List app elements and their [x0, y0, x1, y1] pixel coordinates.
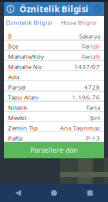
staticText: Hisse Bilgisi	[61, 18, 97, 26]
button[interactable]: Layer info	[4, 2, 17, 16]
staticText: Mahalle/Köy	[8, 52, 44, 61]
staticText: Ada	[8, 73, 19, 81]
button[interactable]: Parsellere dön	[4, 142, 104, 158]
staticText: Parsel	[8, 83, 26, 91]
staticText: Şirt	[90, 113, 100, 122]
staticText: 4728	[84, 83, 100, 91]
staticText: Ana Taşınmaz	[60, 124, 100, 132]
staticText: Sakarya	[79, 32, 100, 40]
staticText: Ferizli	[82, 42, 100, 50]
staticText: Nitelik	[8, 103, 27, 112]
staticText: P-13	[86, 134, 100, 142]
staticText: Öznitelik Bilgisi	[5, 18, 52, 26]
staticText: Pafta	[8, 134, 22, 142]
staticText: İlçe	[8, 42, 18, 50]
button[interactable]: Home	[36, 184, 72, 202]
button[interactable]: Recent apps	[72, 184, 108, 202]
button[interactable]: Settings	[91, 2, 104, 16]
staticText: İl	[8, 32, 12, 40]
staticText: 1437/07	[74, 62, 100, 71]
staticText: Mahalle No	[8, 62, 42, 71]
staticText: 1.196,76	[72, 93, 100, 101]
staticText: Zemin Tip	[8, 124, 38, 132]
button[interactable]: Hisse Bilgisi	[54, 16, 104, 30]
staticText: Tarla	[86, 103, 100, 112]
staticText: Tapu Alanı	[8, 93, 39, 101]
button[interactable]: Back	[0, 184, 36, 202]
button[interactable]: Öznitelik Bilgisi	[4, 16, 54, 30]
staticText: Öznitelik Bilgisi	[19, 3, 88, 15]
staticText: Mevkii	[8, 113, 27, 122]
staticText: Parsellere dön	[30, 146, 77, 155]
staticText: Ferizli	[82, 52, 100, 61]
